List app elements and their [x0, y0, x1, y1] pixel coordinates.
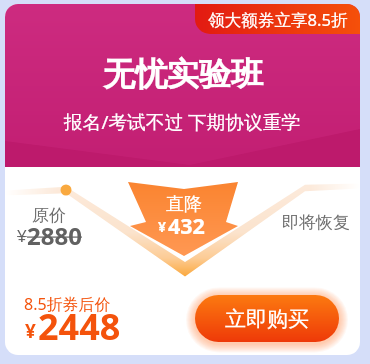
staticText: 无忧实验班: [103, 54, 263, 94]
staticText: 432: [168, 211, 205, 240]
staticText: 直降: [166, 193, 202, 216]
staticText: ¥: [25, 318, 36, 344]
staticText: 2880: [27, 219, 82, 252]
staticText: ¥: [17, 224, 27, 247]
button[interactable]: 立即购买: [195, 295, 339, 342]
button[interactable]: 领大额券立享8.5折: [195, 4, 360, 34]
staticText: 立即购买: [225, 306, 309, 332]
staticText: ¥: [158, 217, 167, 236]
staticText: 2448: [38, 302, 121, 351]
staticText: 报名/考试不过 下期协议重学: [64, 109, 301, 135]
staticText: 即将恢复: [282, 212, 350, 233]
staticText: 原价: [32, 205, 66, 226]
staticText: 8.5折券后价: [24, 293, 111, 315]
staticText: 领大额券立享8.5折: [208, 8, 348, 31]
